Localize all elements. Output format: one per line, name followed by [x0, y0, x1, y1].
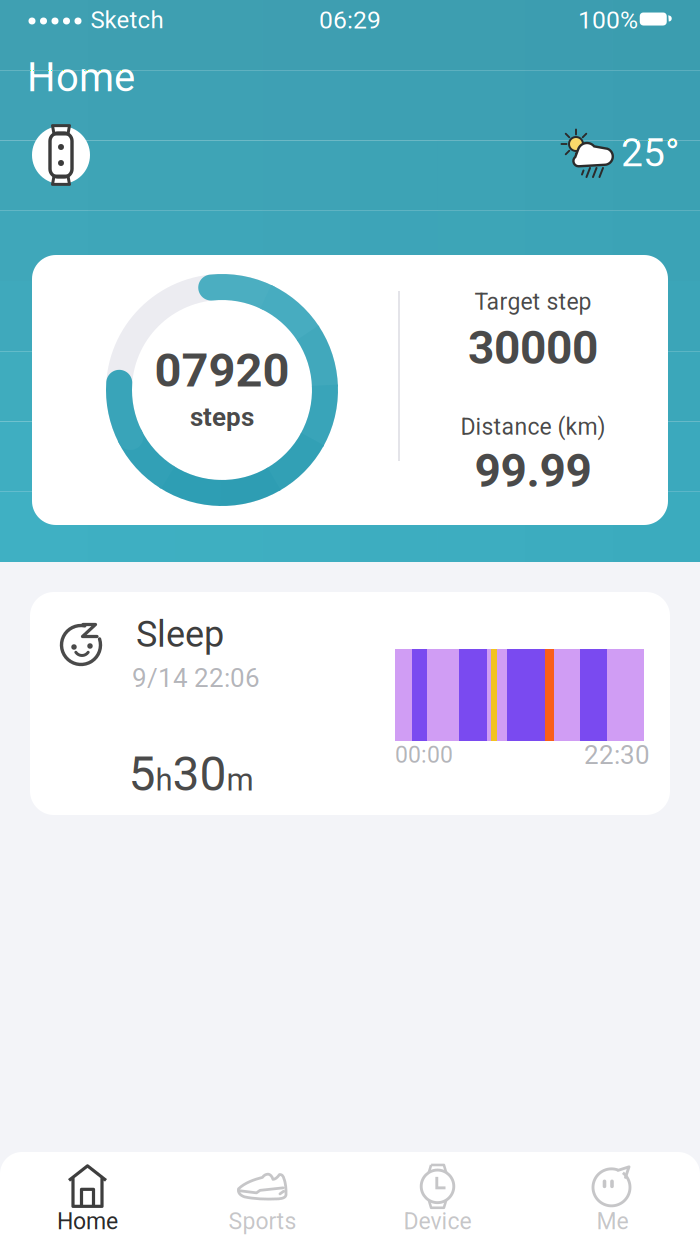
button[interactable]: Me	[525, 1159, 700, 1235]
button[interactable]: Sleep	[30, 592, 670, 815]
staticText: Me	[596, 1208, 628, 1235]
button[interactable]: Steps	[32, 255, 668, 525]
button[interactable]: Sports	[175, 1159, 350, 1235]
staticText: 30000	[468, 322, 598, 374]
staticText: Home	[57, 1208, 118, 1235]
staticText: 00:00	[395, 742, 453, 768]
staticText: steps	[190, 402, 254, 432]
staticText: 06:29	[319, 6, 381, 34]
button[interactable]: Weather	[561, 127, 675, 181]
staticText: Home	[27, 55, 135, 100]
staticText: Device	[403, 1208, 471, 1235]
button[interactable]: Home	[0, 1159, 175, 1235]
staticText: 99.99	[474, 445, 591, 497]
button[interactable]: Device	[350, 1159, 525, 1235]
staticText: 22:30	[584, 740, 650, 770]
staticText: Distance (km)	[460, 414, 605, 440]
staticText: 9/14 22:06	[132, 663, 260, 693]
staticText: Target step	[474, 289, 591, 315]
staticText: 100%	[578, 6, 638, 34]
staticText: 5h30m	[128, 747, 253, 801]
staticText: 25°	[621, 131, 680, 175]
staticText: Sports	[228, 1208, 296, 1235]
button[interactable]: Device	[32, 124, 90, 186]
staticText: Sketch	[90, 6, 163, 34]
staticText: 07920	[154, 344, 289, 397]
staticText: Sleep	[136, 614, 224, 655]
